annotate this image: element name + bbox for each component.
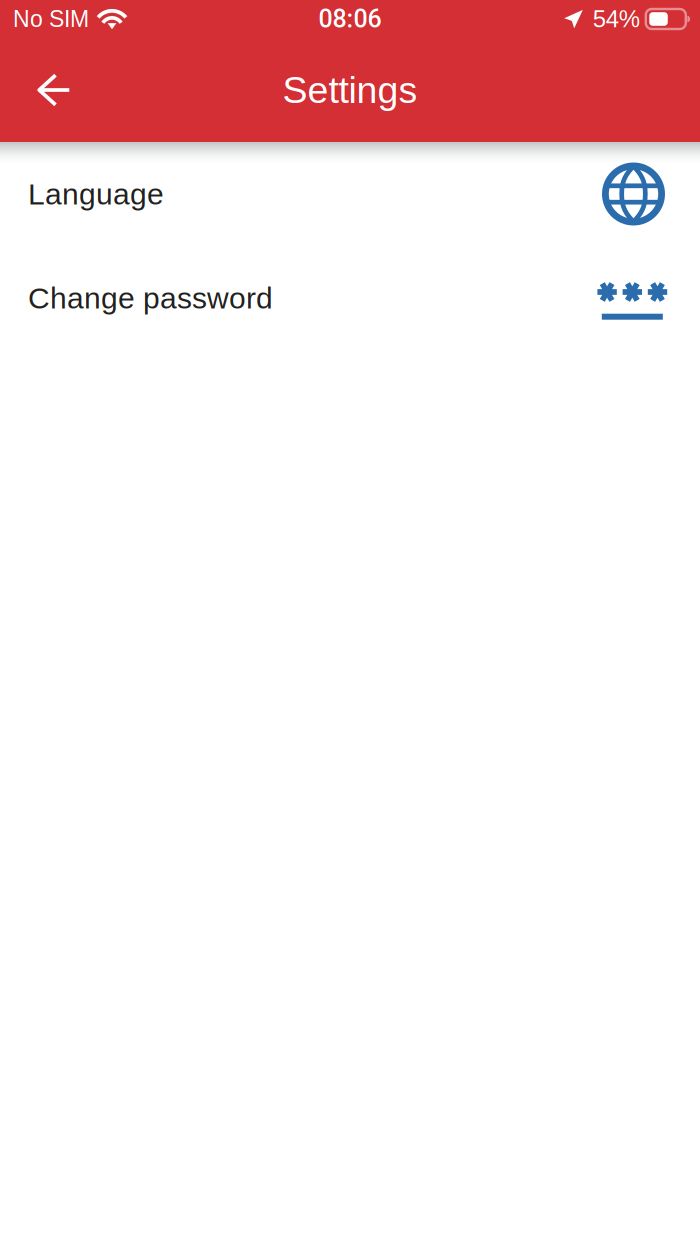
button[interactable]: Language <box>0 142 700 246</box>
staticText: No SIM <box>13 6 89 32</box>
staticText: 54% <box>593 6 640 32</box>
button[interactable]: Back <box>25 61 83 119</box>
button[interactable]: Change password <box>0 246 700 350</box>
staticText: Language <box>28 177 164 211</box>
staticText: Settings <box>282 69 417 111</box>
staticText: 08:06 <box>318 4 381 34</box>
staticText: Change password <box>28 281 273 315</box>
